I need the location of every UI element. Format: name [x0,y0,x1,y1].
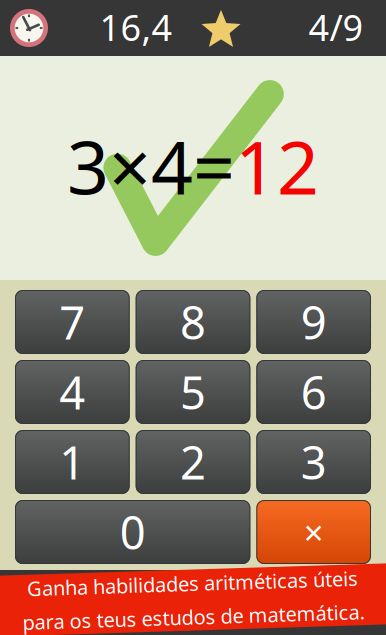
staticText: 8 [180,292,206,352]
button[interactable]: 2 [136,430,250,494]
button[interactable]: Timer [3,0,55,56]
button[interactable]: 6 [256,360,371,424]
staticText: para os teus estudos de matemática. [22,603,364,630]
staticText: 0 [120,502,146,562]
button[interactable]: × [256,500,371,564]
button[interactable]: 3 [256,430,371,494]
staticText: × [304,509,324,555]
staticText: 6 [301,362,327,422]
staticText: 7 [59,292,85,352]
staticText: 4/9 [308,3,363,51]
staticText: 12 [235,117,319,215]
button[interactable]: Ganha habilidades aritméticas úteis [0,569,386,630]
staticText: 1 [59,432,85,492]
staticText: 2 [180,432,206,492]
button[interactable]: 5 [136,360,250,424]
button[interactable]: 4 [15,360,130,424]
button[interactable]: 7 [15,290,130,354]
staticText: 9 [301,292,327,352]
button[interactable]: 8 [136,290,250,354]
button[interactable]: 1 [15,430,130,494]
staticText: Ganha habilidades aritméticas úteis [27,570,358,596]
staticText: 4 [59,362,85,422]
button[interactable]: 0 [15,500,250,564]
staticText: 3 [301,432,327,492]
button[interactable]: 9 [256,290,371,354]
staticText: 16,4 [99,3,172,51]
staticText: 3×4= [67,117,235,215]
staticText: 5 [180,362,206,422]
